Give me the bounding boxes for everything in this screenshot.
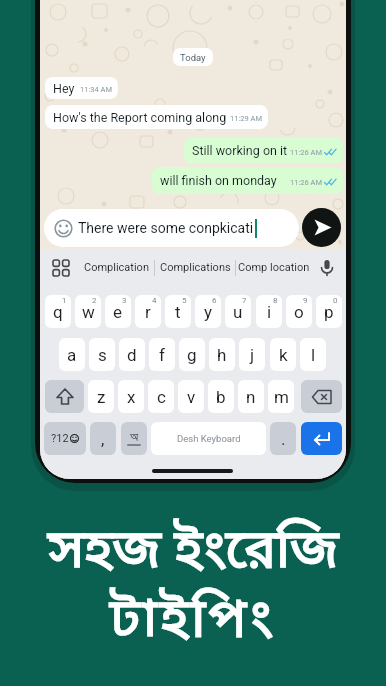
staticText: s (98, 345, 107, 365)
staticText: n (246, 387, 256, 407)
staticText: 6 (212, 296, 217, 305)
button[interactable]: . (270, 422, 296, 455)
button[interactable]: ?12 (44, 422, 86, 455)
staticText: f (159, 345, 165, 365)
button[interactable] (301, 422, 342, 455)
button[interactable]: g (179, 338, 205, 371)
staticText: 1 (62, 296, 67, 305)
staticText: How's the Report coming along (53, 110, 227, 125)
button[interactable]: z (88, 380, 114, 413)
button[interactable]: i (256, 295, 282, 328)
staticText: h (217, 345, 227, 365)
button[interactable] (44, 250, 78, 285)
staticText: . (281, 429, 286, 449)
staticText: y (204, 302, 213, 322)
button[interactable] (312, 250, 342, 285)
button[interactable] (302, 208, 341, 247)
staticText: Hey (53, 81, 75, 96)
staticText: 11:34 AM (80, 85, 112, 94)
staticText: v (187, 387, 196, 407)
button[interactable]: b (208, 380, 234, 413)
button[interactable]: e (105, 295, 131, 328)
button[interactable]: q (45, 295, 71, 328)
staticText: g (187, 345, 197, 365)
staticText: ?12 (51, 432, 69, 445)
staticText: 11:29 AM (230, 114, 262, 123)
staticText: Today (180, 52, 206, 63)
button[interactable]: d (119, 338, 145, 371)
button[interactable]: j (239, 338, 265, 371)
staticText: , (101, 429, 105, 449)
button[interactable]: s (89, 338, 115, 371)
staticText: সহজ ইংরেজি (48, 518, 339, 588)
staticText: q (53, 302, 63, 322)
button[interactable]: m (268, 380, 294, 413)
staticText: z (97, 387, 106, 407)
staticText: 3 (122, 296, 127, 305)
button[interactable]: v (178, 380, 204, 413)
staticText: will finish on monday (160, 173, 277, 188)
button[interactable]: অ (121, 422, 147, 455)
staticText: e (113, 302, 123, 322)
staticText: 9 (303, 296, 308, 305)
staticText: w (82, 302, 95, 322)
staticText: 8 (273, 296, 278, 305)
staticText: 11:26 AM (290, 178, 322, 187)
button[interactable]: Comp location (236, 250, 312, 285)
button[interactable]: Complication (78, 250, 154, 285)
staticText: Complication (84, 261, 149, 274)
button[interactable]: l (300, 338, 326, 371)
staticText: a (67, 345, 77, 365)
button[interactable]: f (149, 338, 175, 371)
button[interactable]: a (59, 338, 85, 371)
staticText: Desh Keyboard (177, 433, 241, 444)
staticText: 7 (242, 296, 247, 305)
staticText: k (279, 345, 288, 365)
staticText: Comp location (238, 261, 310, 274)
staticText: i (267, 302, 272, 322)
staticText: j (250, 345, 255, 365)
staticText: 5 (182, 296, 187, 305)
staticText: 11:26 AM (290, 148, 322, 157)
button[interactable]: t (165, 295, 191, 328)
button[interactable]: u (225, 295, 251, 328)
button[interactable]: Desh Keyboard (151, 422, 266, 455)
staticText: টাইপিং (110, 587, 276, 657)
button[interactable]: , (90, 422, 116, 455)
staticText: l (311, 345, 316, 365)
staticText: r (145, 302, 151, 322)
staticText: p (324, 302, 334, 322)
staticText: b (216, 387, 226, 407)
button[interactable]: k (270, 338, 296, 371)
button[interactable]: There were some conpkicati (44, 209, 299, 247)
button[interactable] (301, 380, 342, 413)
button[interactable]: h (209, 338, 235, 371)
staticText: 4 (152, 296, 157, 305)
button[interactable]: n (238, 380, 264, 413)
staticText: Complications (160, 261, 231, 274)
staticText: There were some conpkicati (78, 220, 254, 236)
staticText: u (233, 302, 243, 322)
staticText: t (175, 302, 181, 322)
button[interactable]: y (195, 295, 221, 328)
button[interactable]: o (286, 295, 312, 328)
staticText: o (294, 302, 304, 322)
button[interactable]: x (118, 380, 144, 413)
staticText: x (127, 387, 136, 407)
staticText: Still working on it (192, 143, 288, 158)
button[interactable]: r (135, 295, 161, 328)
button[interactable]: c (148, 380, 174, 413)
staticText: c (157, 387, 166, 407)
staticText: 2 (92, 296, 97, 305)
staticText: অ (130, 431, 139, 444)
button[interactable]: w (75, 295, 101, 328)
staticText: m (274, 387, 289, 407)
button[interactable]: p (316, 295, 342, 328)
staticText: 0 (333, 296, 338, 305)
staticText: d (127, 345, 137, 365)
button[interactable]: Complications (155, 250, 235, 285)
button[interactable] (45, 380, 84, 413)
